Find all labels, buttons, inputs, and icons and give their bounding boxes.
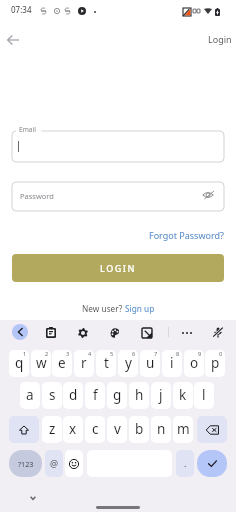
- button[interactable]: l: [194, 382, 214, 409]
- staticText: f: [93, 386, 98, 404]
- button[interactable]: t: [96, 350, 116, 377]
- button[interactable]: ?123: [9, 450, 42, 477]
- staticText: r: [81, 354, 87, 372]
- staticText: n: [157, 420, 166, 438]
- staticText: m: [177, 420, 190, 438]
- button[interactable]: p: [205, 350, 225, 377]
- staticText: i: [170, 354, 174, 372]
- staticText: 9: [198, 350, 202, 358]
- button[interactable]: q: [9, 350, 29, 377]
- staticText: New user?: [82, 303, 125, 314]
- staticText: u: [146, 354, 155, 372]
- staticText: .: [184, 457, 187, 469]
- button[interactable]: j: [151, 382, 171, 409]
- button[interactable]: b: [129, 416, 149, 443]
- button[interactable]: y: [118, 350, 138, 377]
- button[interactable]: Shift: [9, 416, 39, 443]
- button[interactable]: Expand toolbar: [12, 324, 28, 340]
- staticText: x: [69, 420, 77, 438]
- staticText: 5: [110, 350, 114, 358]
- button[interactable]: w: [31, 350, 51, 377]
- staticText: 6: [132, 350, 136, 358]
- button[interactable]: g: [107, 382, 127, 409]
- staticText: p: [211, 354, 220, 372]
- button[interactable]: Show password: [199, 186, 217, 204]
- button[interactable]: Forgot Password?: [145, 225, 228, 245]
- staticText: ?123: [18, 459, 34, 469]
- staticText: 7: [154, 350, 158, 358]
- staticText: s: [49, 386, 56, 404]
- button[interactable]: Voice input off: [209, 324, 226, 341]
- button[interactable]: f: [85, 382, 105, 409]
- staticText: Forgot Password?: [149, 229, 224, 241]
- staticText: 8: [176, 350, 180, 358]
- staticText: Password: [20, 191, 54, 201]
- staticText: b: [135, 420, 144, 438]
- button[interactable]: i: [162, 350, 182, 377]
- staticText: w: [36, 354, 47, 372]
- staticText: c: [92, 420, 99, 438]
- staticText: j: [159, 386, 163, 404]
- staticText: v: [114, 420, 121, 438]
- button[interactable]: More options: [178, 324, 195, 341]
- button[interactable]: [12, 182, 224, 211]
- staticText: y: [125, 354, 132, 372]
- button[interactable]: o: [184, 350, 204, 377]
- staticText: g: [113, 386, 122, 404]
- button[interactable]: .: [176, 450, 194, 477]
- button[interactable]: x: [63, 416, 83, 443]
- staticText: @: [50, 457, 59, 469]
- button[interactable]: @: [45, 450, 63, 477]
- button[interactable]: Clipboard: [42, 324, 59, 341]
- staticText: z: [49, 420, 56, 438]
- button[interactable]: Login: [203, 28, 236, 50]
- button[interactable]: Backspace: [197, 416, 227, 443]
- button[interactable]: n: [151, 416, 171, 443]
- staticText: LOGIN: [100, 262, 136, 274]
- staticText: 2: [45, 350, 49, 358]
- staticText: 1: [23, 350, 27, 358]
- button[interactable]: Enter: [197, 450, 227, 477]
- button[interactable]: Themes: [106, 324, 123, 341]
- staticText: 0: [219, 350, 223, 358]
- button[interactable]: Stickers: [138, 324, 155, 341]
- button[interactable]: a: [20, 382, 40, 409]
- staticText: e: [58, 354, 66, 372]
- button[interactable]: m: [173, 416, 193, 443]
- button[interactable]: Emoji: [65, 450, 83, 477]
- button[interactable]: v: [107, 416, 127, 443]
- staticText: k: [179, 386, 187, 404]
- button[interactable]: k: [173, 382, 193, 409]
- staticText: 07:34: [11, 4, 32, 15]
- button[interactable]: Sign up: [125, 303, 155, 314]
- staticText: o: [190, 354, 199, 372]
- button[interactable]: Hide keyboard: [24, 489, 42, 507]
- staticText: a: [26, 386, 34, 404]
- button[interactable]: d: [63, 382, 83, 409]
- staticText: Login: [208, 33, 232, 45]
- button[interactable]: c: [85, 416, 105, 443]
- button[interactable]: r: [74, 350, 94, 377]
- staticText: 4: [88, 350, 92, 358]
- button[interactable]: u: [140, 350, 160, 377]
- button[interactable]: e: [52, 350, 72, 377]
- button[interactable]: Back: [0, 27, 26, 53]
- button[interactable]: h: [129, 382, 149, 409]
- button[interactable]: z: [42, 416, 62, 443]
- staticText: q: [15, 354, 24, 372]
- staticText: Sign up: [125, 303, 155, 314]
- button[interactable]: LOGIN: [12, 254, 224, 282]
- button[interactable]: [12, 131, 224, 162]
- staticText: t: [104, 354, 109, 372]
- staticText: Email: [19, 125, 36, 134]
- staticText: h: [135, 386, 144, 404]
- button[interactable]: s: [42, 382, 62, 409]
- staticText: 3: [66, 350, 70, 358]
- staticText: d: [69, 386, 78, 404]
- button[interactable]: Settings: [74, 324, 91, 341]
- staticText: l: [202, 386, 206, 404]
